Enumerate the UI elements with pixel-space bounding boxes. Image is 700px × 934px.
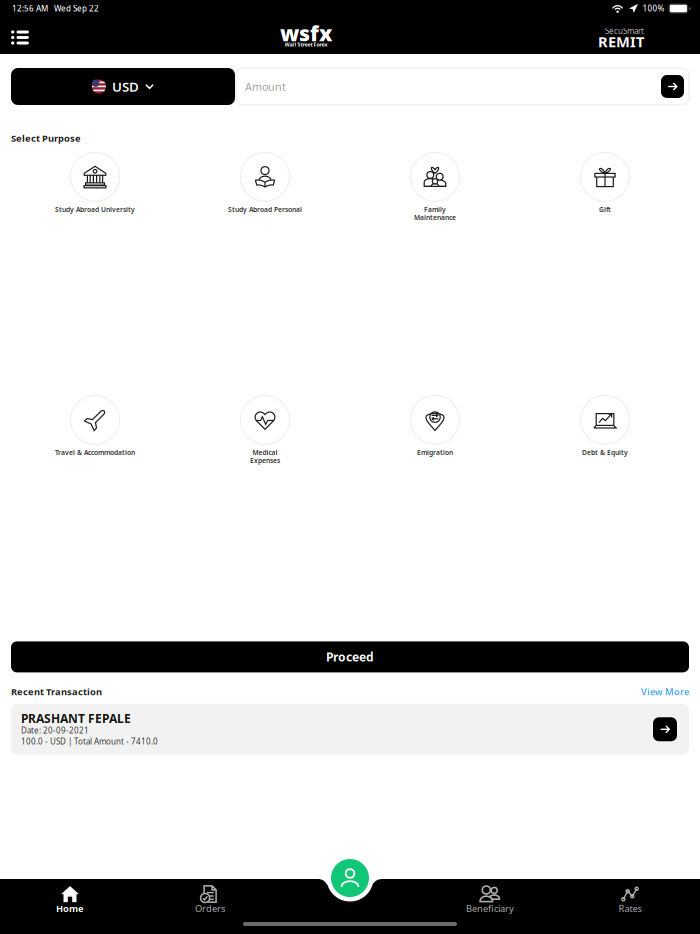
staticText: Debt & Equity <box>582 448 628 457</box>
staticText: View More <box>641 685 689 698</box>
button[interactable]: Orders <box>140 879 280 934</box>
staticText: 100% <box>643 3 665 14</box>
staticText: Expenses <box>250 456 280 465</box>
button[interactable]: Study Abroad Personal <box>180 152 350 213</box>
staticText: 12:56 AM Wed Sep 22 <box>12 3 99 14</box>
staticText: USD <box>112 78 139 95</box>
staticText: wsfx <box>280 19 332 47</box>
button[interactable]: Gift <box>520 152 690 213</box>
staticText: Study Abroad University <box>55 205 135 214</box>
button[interactable]: Travel & Accommodation <box>10 395 180 456</box>
staticText: REMIT <box>598 32 644 51</box>
button[interactable]: Beneficiary <box>420 879 560 934</box>
button[interactable]: SecuSmart Remit <box>598 26 644 47</box>
staticText: Date: 20-09-2021 <box>21 725 89 736</box>
staticText: Home <box>56 902 84 915</box>
staticText: Family <box>424 205 446 214</box>
staticText: Travel & Accommodation <box>55 448 135 457</box>
staticText: Proceed <box>326 649 374 665</box>
staticText: Orders <box>195 902 225 915</box>
button[interactable]: PRASHANT FEPALE <box>11 704 689 755</box>
button[interactable]: USD <box>11 68 235 105</box>
button[interactable]: Profile <box>329 857 371 899</box>
staticText: Gift <box>599 205 611 214</box>
button[interactable]: Medical <box>180 395 350 464</box>
staticText: Emigration <box>417 448 453 457</box>
button[interactable]: Debt & Equity <box>520 395 690 456</box>
staticText: Medical <box>252 448 277 457</box>
button[interactable]: Convert <box>661 75 684 98</box>
staticText: Wall Street Forex <box>284 41 327 48</box>
button[interactable]: Rates <box>560 879 700 934</box>
staticText: Beneficiary <box>466 902 514 915</box>
button[interactable]: Family <box>350 152 520 221</box>
staticText: 100.0 - USD | Total Amount - 7410.0 <box>21 736 158 747</box>
staticText: SecuSmart <box>605 26 644 36</box>
button[interactable]: View More <box>641 685 689 698</box>
button[interactable]: Emigration <box>350 395 520 456</box>
staticText: Amount <box>245 79 286 94</box>
staticText: Rates <box>618 902 641 915</box>
staticText: Study Abroad Personal <box>228 205 302 214</box>
button[interactable]: Home <box>0 879 140 934</box>
button[interactable]: Menu <box>0 21 39 52</box>
staticText: PRASHANT FEPALE <box>21 710 131 726</box>
staticText: Maintenance <box>414 213 456 222</box>
button[interactable]: Study Abroad University <box>10 152 180 213</box>
staticText: Select Purpose <box>11 132 81 144</box>
staticText: Recent Transaction <box>11 685 102 698</box>
button[interactable]: Proceed <box>11 641 689 672</box>
